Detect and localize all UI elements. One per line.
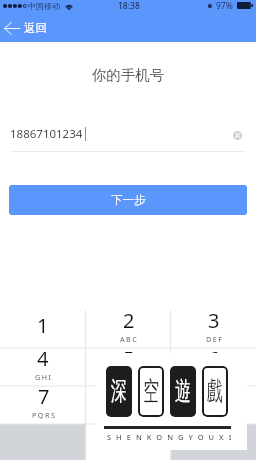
staticText: 空 (143, 375, 159, 408)
button[interactable]: 下一步 (9, 185, 247, 215)
button[interactable]: 返回 (0, 16, 55, 42)
staticText: 你的手机号 (0, 66, 256, 84)
staticText: 1 (37, 312, 49, 339)
staticText: 9 (208, 383, 220, 410)
staticText: 3 (208, 307, 220, 334)
button[interactable]: 8 (86, 386, 171, 424)
staticText: 18:38 (118, 0, 140, 11)
staticText: MNO (203, 372, 226, 382)
staticText: 18867101234 (10, 126, 83, 142)
staticText: 遊 (175, 375, 191, 408)
staticText: JKL (122, 372, 137, 382)
staticText: 中国移动 (28, 1, 60, 11)
button[interactable]: 6 (171, 348, 256, 386)
staticText: 返回 (24, 21, 47, 35)
staticText: 7 (38, 383, 50, 410)
staticText: 4 (37, 345, 49, 372)
staticText: 97% (216, 0, 233, 11)
staticText: 5 (123, 345, 135, 372)
staticText: 下一步 (111, 193, 146, 207)
button[interactable]: Clear text (233, 131, 242, 140)
staticText: 8 (123, 383, 135, 410)
button[interactable]: 2 (86, 310, 171, 348)
staticText: ABC (120, 334, 139, 344)
button[interactable]: 9 (171, 386, 256, 424)
button[interactable]: 4 (0, 348, 86, 386)
staticText: 0 (123, 425, 135, 452)
staticText: PQRS (32, 410, 57, 420)
button[interactable] (171, 424, 256, 460)
button[interactable]: 0 (86, 424, 171, 460)
staticText: TUV (120, 410, 139, 420)
staticText: DEF (206, 334, 224, 344)
button[interactable]: 3 (171, 310, 256, 348)
button[interactable]: 1 (0, 310, 86, 348)
staticText: GHI (35, 372, 53, 382)
button[interactable]: 7 (0, 386, 86, 424)
staticText: 6 (208, 345, 220, 372)
staticText: 戲 (207, 375, 223, 408)
button[interactable]: 5 (86, 348, 171, 386)
staticText: SHENKONGYOUXI (107, 432, 237, 442)
staticText: 深 (111, 375, 127, 408)
staticText: WXYZ (202, 410, 228, 420)
staticText: 2 (123, 307, 135, 334)
